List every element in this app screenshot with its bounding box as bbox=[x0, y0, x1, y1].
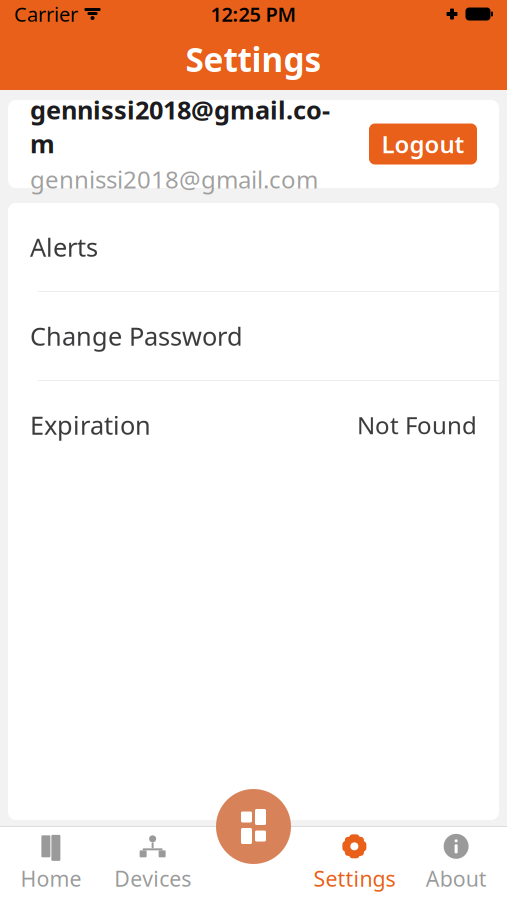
staticText: gennissi2018@gmail.com bbox=[30, 93, 330, 160]
staticText: About bbox=[426, 864, 487, 893]
staticText: Logout bbox=[381, 128, 464, 160]
staticText: gennissi2018@gmail.com bbox=[30, 163, 318, 195]
button[interactable]: Alerts bbox=[8, 203, 499, 291]
button[interactable]: About bbox=[405, 827, 507, 899]
staticText: Alerts bbox=[30, 230, 98, 264]
button[interactable]: Dashboard bbox=[216, 789, 291, 864]
staticText: Carrier bbox=[14, 1, 78, 27]
staticText: 12:25 PM bbox=[210, 1, 296, 27]
staticText: Devices bbox=[114, 864, 191, 893]
button[interactable]: Home bbox=[0, 827, 102, 899]
staticText: Change Password bbox=[30, 319, 243, 353]
button[interactable]: Logout bbox=[369, 123, 477, 164]
button[interactable]: Settings bbox=[303, 827, 405, 899]
staticText: Not Found bbox=[357, 409, 477, 441]
button[interactable]: Expiration bbox=[8, 381, 499, 469]
staticText: Expiration bbox=[30, 408, 151, 442]
button[interactable]: Devices bbox=[102, 827, 204, 899]
staticText: Settings bbox=[313, 864, 395, 893]
staticText: Home bbox=[20, 864, 81, 893]
button[interactable]: Change Password bbox=[8, 292, 499, 380]
staticText: Settings bbox=[185, 37, 321, 81]
